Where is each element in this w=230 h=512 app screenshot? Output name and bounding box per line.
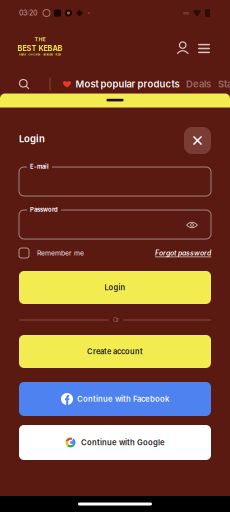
button[interactable]: Sta xyxy=(218,78,230,90)
staticText: Password xyxy=(30,206,58,213)
staticText: KEBAB · CHICKEN · BURGERS · PIZZA xyxy=(18,53,61,56)
button[interactable]: Search xyxy=(18,78,29,89)
staticText: Continue with Google xyxy=(81,438,165,447)
button[interactable]: Continue with Facebook xyxy=(19,382,211,416)
staticText: Deals xyxy=(186,78,211,90)
button[interactable]: Continue with Google xyxy=(19,425,211,460)
staticText: Or xyxy=(113,316,119,323)
staticText: Create account xyxy=(87,347,143,356)
staticText: 03:20 xyxy=(19,9,37,17)
staticText: THE xyxy=(34,36,45,43)
button[interactable]: Login xyxy=(19,271,211,304)
button[interactable]: Deals xyxy=(186,78,211,90)
button[interactable]: Close xyxy=(184,127,211,154)
staticText: Sta xyxy=(218,78,230,90)
staticText: Continue with Facebook xyxy=(77,394,169,404)
staticText: Remember me xyxy=(37,249,84,257)
staticText: ∞ xyxy=(183,9,189,17)
staticText: Forgot password xyxy=(155,249,211,257)
staticText: Login xyxy=(104,283,125,292)
staticText: Login xyxy=(19,133,45,144)
button[interactable]: Menu xyxy=(193,37,215,59)
staticText: E-mail xyxy=(30,163,49,170)
button[interactable]: Forgot password xyxy=(155,249,211,257)
button[interactable]: Remember me xyxy=(19,248,84,258)
staticText: BEST KEBAB xyxy=(17,44,62,53)
button[interactable]: Most popular products xyxy=(75,78,179,90)
button[interactable]: Account xyxy=(172,37,194,59)
staticText: Most popular products xyxy=(75,78,179,90)
button[interactable]: Create account xyxy=(19,335,211,368)
